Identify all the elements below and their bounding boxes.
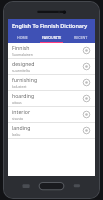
staticText: Suomalainen [12, 52, 33, 57]
button[interactable]: Finnish [8, 43, 95, 59]
staticText: kalusteet [12, 84, 27, 89]
staticText: aitaus [12, 100, 22, 105]
button[interactable]: Add to favourites [82, 94, 91, 103]
staticText: designed [12, 60, 35, 67]
staticText: interior [12, 108, 31, 115]
button[interactable]: landing [8, 123, 95, 139]
button[interactable]: designed [8, 59, 95, 75]
staticText: English To Finnish Dictionary [12, 22, 88, 29]
button[interactable]: Add to favourites [82, 62, 91, 71]
staticText: Finnish [12, 44, 30, 51]
button[interactable]: furnishing [8, 75, 95, 91]
staticText: suunniteltu [12, 68, 31, 73]
button[interactable]: interior [8, 107, 95, 123]
button[interactable]: Add to favourites [82, 78, 91, 87]
staticText: HOME [17, 35, 28, 40]
staticText: lasku [12, 132, 21, 137]
staticText: RECENT [74, 35, 88, 40]
button[interactable]: RECENT [66, 32, 95, 43]
button[interactable]: HOME [8, 32, 37, 43]
button[interactable]: Add to favourites [82, 110, 91, 119]
staticText: landing [12, 124, 31, 131]
button[interactable]: hoarding [8, 91, 95, 107]
button[interactable]: Add to favourites [82, 46, 91, 55]
button[interactable]: FAVOURITE [37, 32, 66, 43]
staticText: FAVOURITE [42, 35, 62, 40]
staticText: hoarding [12, 92, 35, 99]
staticText: sisusta [12, 116, 23, 121]
button[interactable]: Add to favourites [82, 126, 91, 135]
staticText: furnishing [12, 76, 38, 83]
